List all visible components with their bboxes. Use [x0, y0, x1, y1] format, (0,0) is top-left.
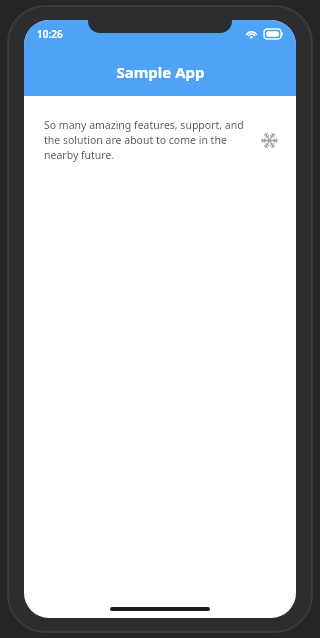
other: Snowflake: [261, 132, 278, 149]
staticText: 10:26: [37, 27, 63, 41]
other: Battery: [264, 29, 283, 39]
staticText: Sample App: [116, 62, 205, 82]
other: Wi-Fi: [245, 29, 258, 39]
staticText: So many amazing features, support, and t…: [44, 118, 253, 162]
button[interactable]: So many amazing features, support, and t…: [30, 101, 290, 180]
